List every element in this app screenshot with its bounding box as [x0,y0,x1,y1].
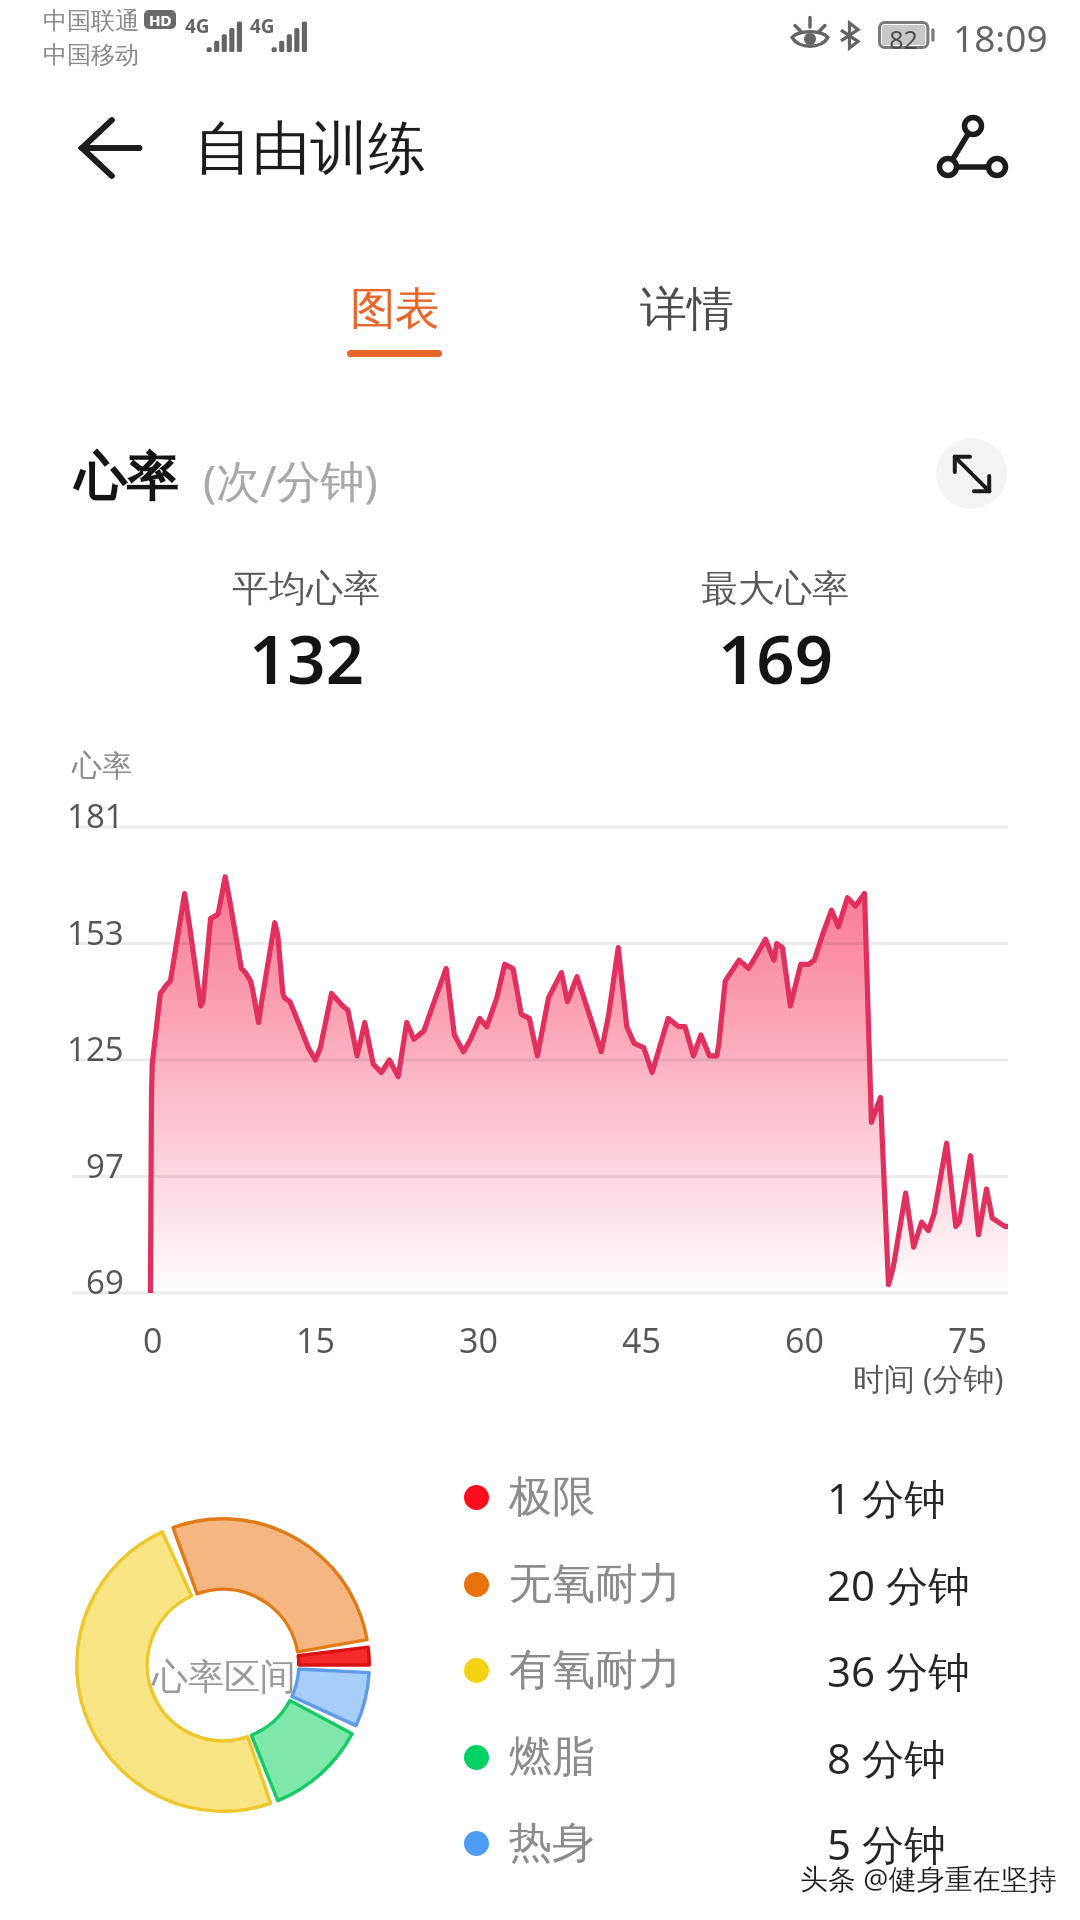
staticText: 心率区间 [152,1654,296,1699]
staticText: 极限 [509,1470,827,1524]
button[interactable]: 极限 [464,1454,1004,1540]
staticText: 75 [948,1317,987,1363]
staticText: 97 [86,1143,124,1188]
staticText: 无氧耐力 [509,1557,827,1611]
staticText: 最大心率 [701,565,849,612]
staticText: 详情 [640,280,734,339]
staticText: 181 [67,793,124,838]
staticText: 有氧耐力 [509,1643,827,1697]
staticText: 1 分钟 [827,1469,946,1526]
staticText: 自由训练 [194,112,426,185]
button[interactable]: 热身 [464,1800,1004,1886]
staticText: 4G [250,13,275,39]
button[interactable]: 详情 [547,280,827,390]
staticText: 18:09 [953,12,1048,62]
staticText: 头条 @健身重在坚持 [800,1859,1057,1897]
staticText: 132 [249,612,364,703]
staticText: 中国移动 [43,40,139,70]
staticText: 8 分钟 [827,1729,946,1786]
staticText: 82 [878,22,929,56]
staticText: 125 [67,1026,124,1071]
staticText: 时间 (分钟) [853,1357,1004,1399]
staticText: 5 分钟 [827,1815,946,1872]
staticText: 15 [296,1317,335,1363]
staticText: 36 分钟 [827,1642,970,1699]
staticText: 30 [459,1317,498,1363]
staticText: 169 [718,612,833,703]
button[interactable]: 燃脂 [464,1714,1004,1800]
staticText: 中国联通 [43,6,139,36]
staticText: 153 [67,910,124,955]
staticText: 心率 [74,445,178,511]
staticText: 图表 [350,281,440,338]
staticText: 45 [622,1317,661,1363]
staticText: (次/分钟) [203,450,378,510]
button[interactable]: Share [925,104,1019,198]
staticText: 4G [185,13,210,39]
staticText: 69 [86,1259,124,1304]
staticText: HD [149,10,172,29]
staticText: 20 分钟 [827,1556,970,1613]
button[interactable]: 无氧耐力 [464,1541,1004,1627]
staticText: 60 [785,1317,824,1363]
staticText: 燃脂 [509,1730,827,1784]
staticText: 0 [143,1317,163,1363]
staticText: 心率 [72,747,132,785]
staticText: 平均心率 [232,565,380,612]
staticText: 热身 [509,1816,827,1870]
button[interactable]: 有氧耐力 [464,1627,1004,1713]
button[interactable]: Back [71,109,149,187]
button[interactable]: Expand chart [936,438,1007,509]
button[interactable]: 图表 [254,281,534,391]
